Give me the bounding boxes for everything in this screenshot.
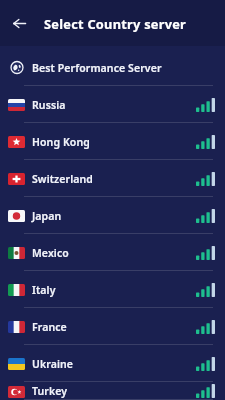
staticText: Ukraine bbox=[32, 357, 74, 371]
button[interactable]: Turkey bbox=[0, 382, 225, 400]
staticText: Russia bbox=[32, 98, 66, 112]
staticText: Best Performance Server bbox=[32, 61, 162, 75]
staticText: Turkey bbox=[32, 384, 68, 398]
button[interactable]: Switzerland bbox=[0, 160, 225, 197]
button[interactable]: France bbox=[0, 308, 225, 345]
button[interactable]: Japan bbox=[0, 197, 225, 234]
staticText: Japan bbox=[32, 209, 62, 223]
staticText: Switzerland bbox=[32, 172, 93, 186]
button[interactable]: Mexico bbox=[0, 234, 225, 271]
button[interactable]: Italy bbox=[0, 271, 225, 308]
button[interactable]: Hong Kong bbox=[0, 123, 225, 160]
staticText: Mexico bbox=[32, 246, 69, 260]
button[interactable]: Back bbox=[6, 10, 32, 36]
staticText: Select Country server bbox=[44, 15, 187, 32]
staticText: France bbox=[32, 320, 67, 334]
staticText: Italy bbox=[32, 283, 56, 297]
button[interactable]: Russia bbox=[0, 86, 225, 123]
button[interactable]: Best Performance Server bbox=[0, 49, 225, 86]
button[interactable]: Ukraine bbox=[0, 345, 225, 382]
staticText: Hong Kong bbox=[32, 135, 90, 149]
